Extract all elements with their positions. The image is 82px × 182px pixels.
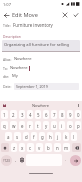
staticText: 5 <box>37 112 40 118</box>
staticText: 8 <box>61 112 64 118</box>
button[interactable]: 6 <box>43 110 49 119</box>
button[interactable]: t <box>35 121 41 130</box>
staticText: ?123 <box>3 159 10 163</box>
button[interactable]: . <box>64 154 68 166</box>
staticText: m <box>64 145 69 151</box>
staticText: s <box>16 134 19 140</box>
button[interactable]: l <box>71 132 77 141</box>
button[interactable]: 1 <box>1 110 8 119</box>
button[interactable]: z <box>11 143 17 152</box>
staticText: z <box>13 145 16 151</box>
staticText: Organizing all furniture for selling <box>4 42 70 48</box>
button[interactable]: q <box>1 121 8 130</box>
staticText: w <box>12 123 16 129</box>
button[interactable]: v <box>36 143 43 152</box>
button[interactable]: Emoji <box>20 154 24 166</box>
button[interactable]: 8 <box>59 110 65 119</box>
button[interactable]: Alias: <box>3 56 79 63</box>
button[interactable]: To: <box>3 65 79 72</box>
staticText: 1:07 <box>3 2 11 7</box>
button[interactable]: g <box>39 132 45 141</box>
staticText: Title: <box>3 23 11 28</box>
staticText: 0 <box>77 112 80 118</box>
staticText: To: <box>3 66 8 71</box>
staticText: g <box>41 134 44 140</box>
staticText: i <box>61 123 63 129</box>
staticText: l <box>73 134 75 140</box>
staticText: Nowhere <box>14 56 32 62</box>
button[interactable]: h <box>47 132 53 141</box>
button[interactable]: Title: <box>3 22 79 28</box>
button[interactable]: c <box>27 143 34 152</box>
staticText: September 1, 2019 <box>16 84 48 89</box>
staticText: j <box>57 134 59 140</box>
button[interactable]: i <box>59 121 65 130</box>
staticText: c <box>29 145 32 151</box>
button[interactable]: ?123 <box>1 155 12 166</box>
button[interactable]: Save <box>70 9 81 20</box>
button[interactable]: 5 <box>35 110 41 119</box>
button[interactable]: y <box>43 121 49 130</box>
staticText: 4 <box>29 112 32 118</box>
button[interactable]: , <box>14 154 18 166</box>
staticText: Nowhere <box>10 65 28 71</box>
button[interactable]: Clipboard <box>0 101 8 109</box>
button[interactable]: 9 <box>67 110 73 119</box>
button[interactable]: More options <box>74 101 82 109</box>
button[interactable]: 2 <box>10 110 17 119</box>
button[interactable]: Shift <box>1 143 9 152</box>
staticText: , <box>15 157 17 163</box>
button[interactable]: x <box>19 143 25 152</box>
staticText: a <box>7 134 10 140</box>
button[interactable]: p <box>75 121 81 130</box>
staticText: d <box>25 134 28 140</box>
button[interactable]: k <box>63 132 69 141</box>
button[interactable]: n <box>54 143 61 152</box>
button[interactable]: w <box>10 121 17 130</box>
staticText: Description <box>3 34 21 38</box>
staticText: 9 <box>69 112 72 118</box>
staticText: e <box>21 123 24 129</box>
staticText: . <box>65 157 67 163</box>
button[interactable]: m <box>63 143 70 152</box>
button[interactable]: Discard <box>59 9 70 20</box>
button[interactable]: e <box>19 121 25 130</box>
staticText: t <box>37 123 39 129</box>
button[interactable]: Enter <box>70 155 81 166</box>
button[interactable]: a <box>5 132 12 141</box>
staticText: x <box>21 145 24 151</box>
staticText: p <box>77 123 80 129</box>
staticText: 1 <box>3 112 6 118</box>
button[interactable]: dte: <box>3 73 79 80</box>
button[interactable]: Organizing all furniture for selling <box>2 40 80 51</box>
staticText: k <box>65 134 68 140</box>
button[interactable]: 7 <box>51 110 57 119</box>
button[interactable]: j <box>55 132 61 141</box>
button[interactable]: o <box>67 121 73 130</box>
staticText: 7 <box>53 112 56 118</box>
staticText: Furniture inventory <box>13 22 53 28</box>
button[interactable]: r <box>27 121 33 130</box>
staticText: r <box>29 123 31 129</box>
staticText: f <box>33 134 35 140</box>
button[interactable]: f <box>31 132 37 141</box>
button[interactable]: u <box>51 121 57 130</box>
staticText: y <box>45 123 48 129</box>
button[interactable]: 4 <box>27 110 33 119</box>
staticText: Nowhere <box>32 103 50 108</box>
button[interactable]: s <box>14 132 21 141</box>
button[interactable]: 0 <box>75 110 81 119</box>
button[interactable]: Back <box>0 9 12 21</box>
staticText: q <box>3 123 6 129</box>
staticText: b <box>47 145 50 151</box>
button[interactable]: d <box>23 132 29 141</box>
button[interactable]: b <box>45 143 52 152</box>
button[interactable]: Backspace <box>72 143 81 152</box>
staticText: 2 <box>12 112 15 118</box>
staticText: dte: <box>3 74 10 79</box>
staticText: 3 <box>21 112 24 118</box>
button[interactable]: 3 <box>19 110 25 119</box>
staticText: Alias: <box>3 57 12 62</box>
button[interactable]: September 1, 2019 <box>14 83 79 90</box>
